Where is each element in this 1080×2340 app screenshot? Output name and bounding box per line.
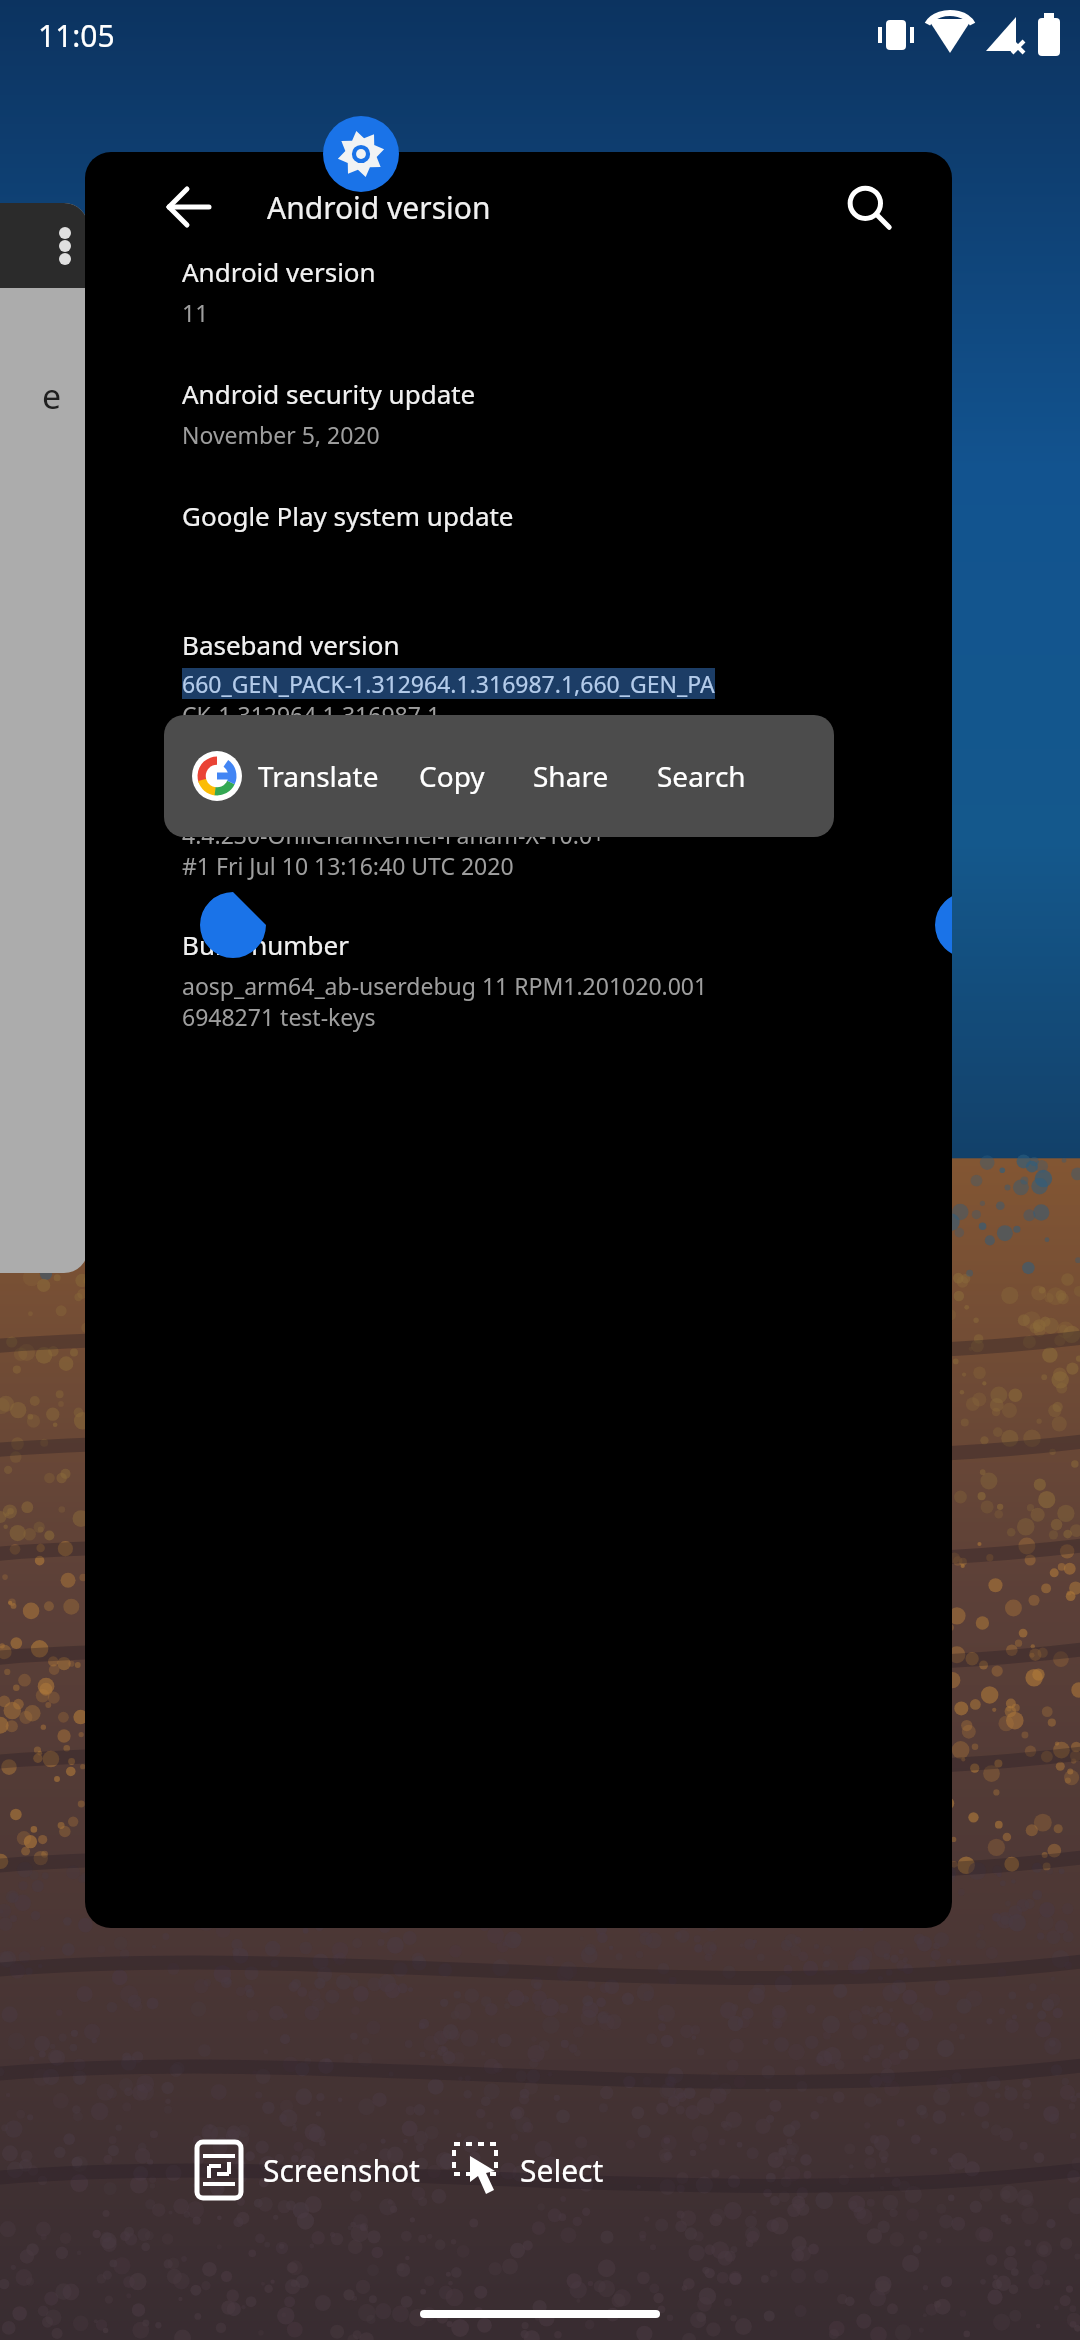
staticText: Screenshot bbox=[263, 2150, 420, 2191]
button[interactable]: Back bbox=[163, 182, 213, 232]
staticText: 660_GEN_PACK-1.312964.1.316987.1,660_GEN… bbox=[182, 668, 715, 699]
staticText: Android version bbox=[267, 187, 491, 228]
staticText: 6948271 test-keys bbox=[182, 1001, 376, 1032]
button[interactable]: Search bbox=[846, 184, 892, 230]
staticText: #1 Fri Jul 10 13:16:40 UTC 2020 bbox=[182, 850, 514, 881]
other: More options bbox=[60, 227, 70, 265]
staticText: November 5, 2020 bbox=[182, 419, 380, 450]
button[interactable]: Build number bbox=[182, 927, 952, 1032]
staticText: Copy bbox=[419, 757, 485, 795]
staticText: Translate bbox=[258, 757, 379, 795]
staticText: Baseband version bbox=[182, 627, 400, 662]
button[interactable]: Android version bbox=[182, 254, 952, 328]
staticText: Kernel version bbox=[182, 776, 358, 811]
staticText: Search bbox=[657, 757, 746, 795]
button[interactable]: Baseband version bbox=[182, 627, 952, 730]
staticText: 4.4.230-OniiChanKernel-Faham-X-10.0+ bbox=[182, 819, 606, 850]
button[interactable]: Screenshot bbox=[185, 2130, 432, 2210]
staticText: Share bbox=[533, 757, 609, 795]
staticText: Build number bbox=[182, 927, 349, 962]
button[interactable]: Select bbox=[440, 2130, 616, 2210]
staticText: e bbox=[42, 373, 62, 419]
staticText: Android version bbox=[182, 254, 376, 289]
button[interactable]: Translate bbox=[164, 715, 395, 837]
staticText: aosp_arm64_ab-userdebug 11 RPM1.201020.0… bbox=[182, 970, 708, 1001]
button[interactable]: More options bbox=[0, 203, 88, 1273]
button[interactable]: Share bbox=[509, 715, 633, 837]
staticText: Google Play system update bbox=[182, 498, 514, 533]
staticText: Select bbox=[520, 2150, 604, 2191]
staticText: 11:05 bbox=[38, 15, 115, 56]
staticText: Android security update bbox=[182, 376, 476, 411]
button[interactable]: Android security update bbox=[182, 376, 952, 450]
staticText: 11 bbox=[182, 297, 209, 328]
button[interactable]: Copy bbox=[395, 715, 509, 837]
button[interactable]: Kernel version bbox=[182, 776, 952, 881]
button[interactable]: Search bbox=[633, 715, 770, 837]
staticText: CK-1.312964.1.316987.1 bbox=[182, 699, 441, 730]
button[interactable]: Google Play system update bbox=[182, 498, 952, 533]
